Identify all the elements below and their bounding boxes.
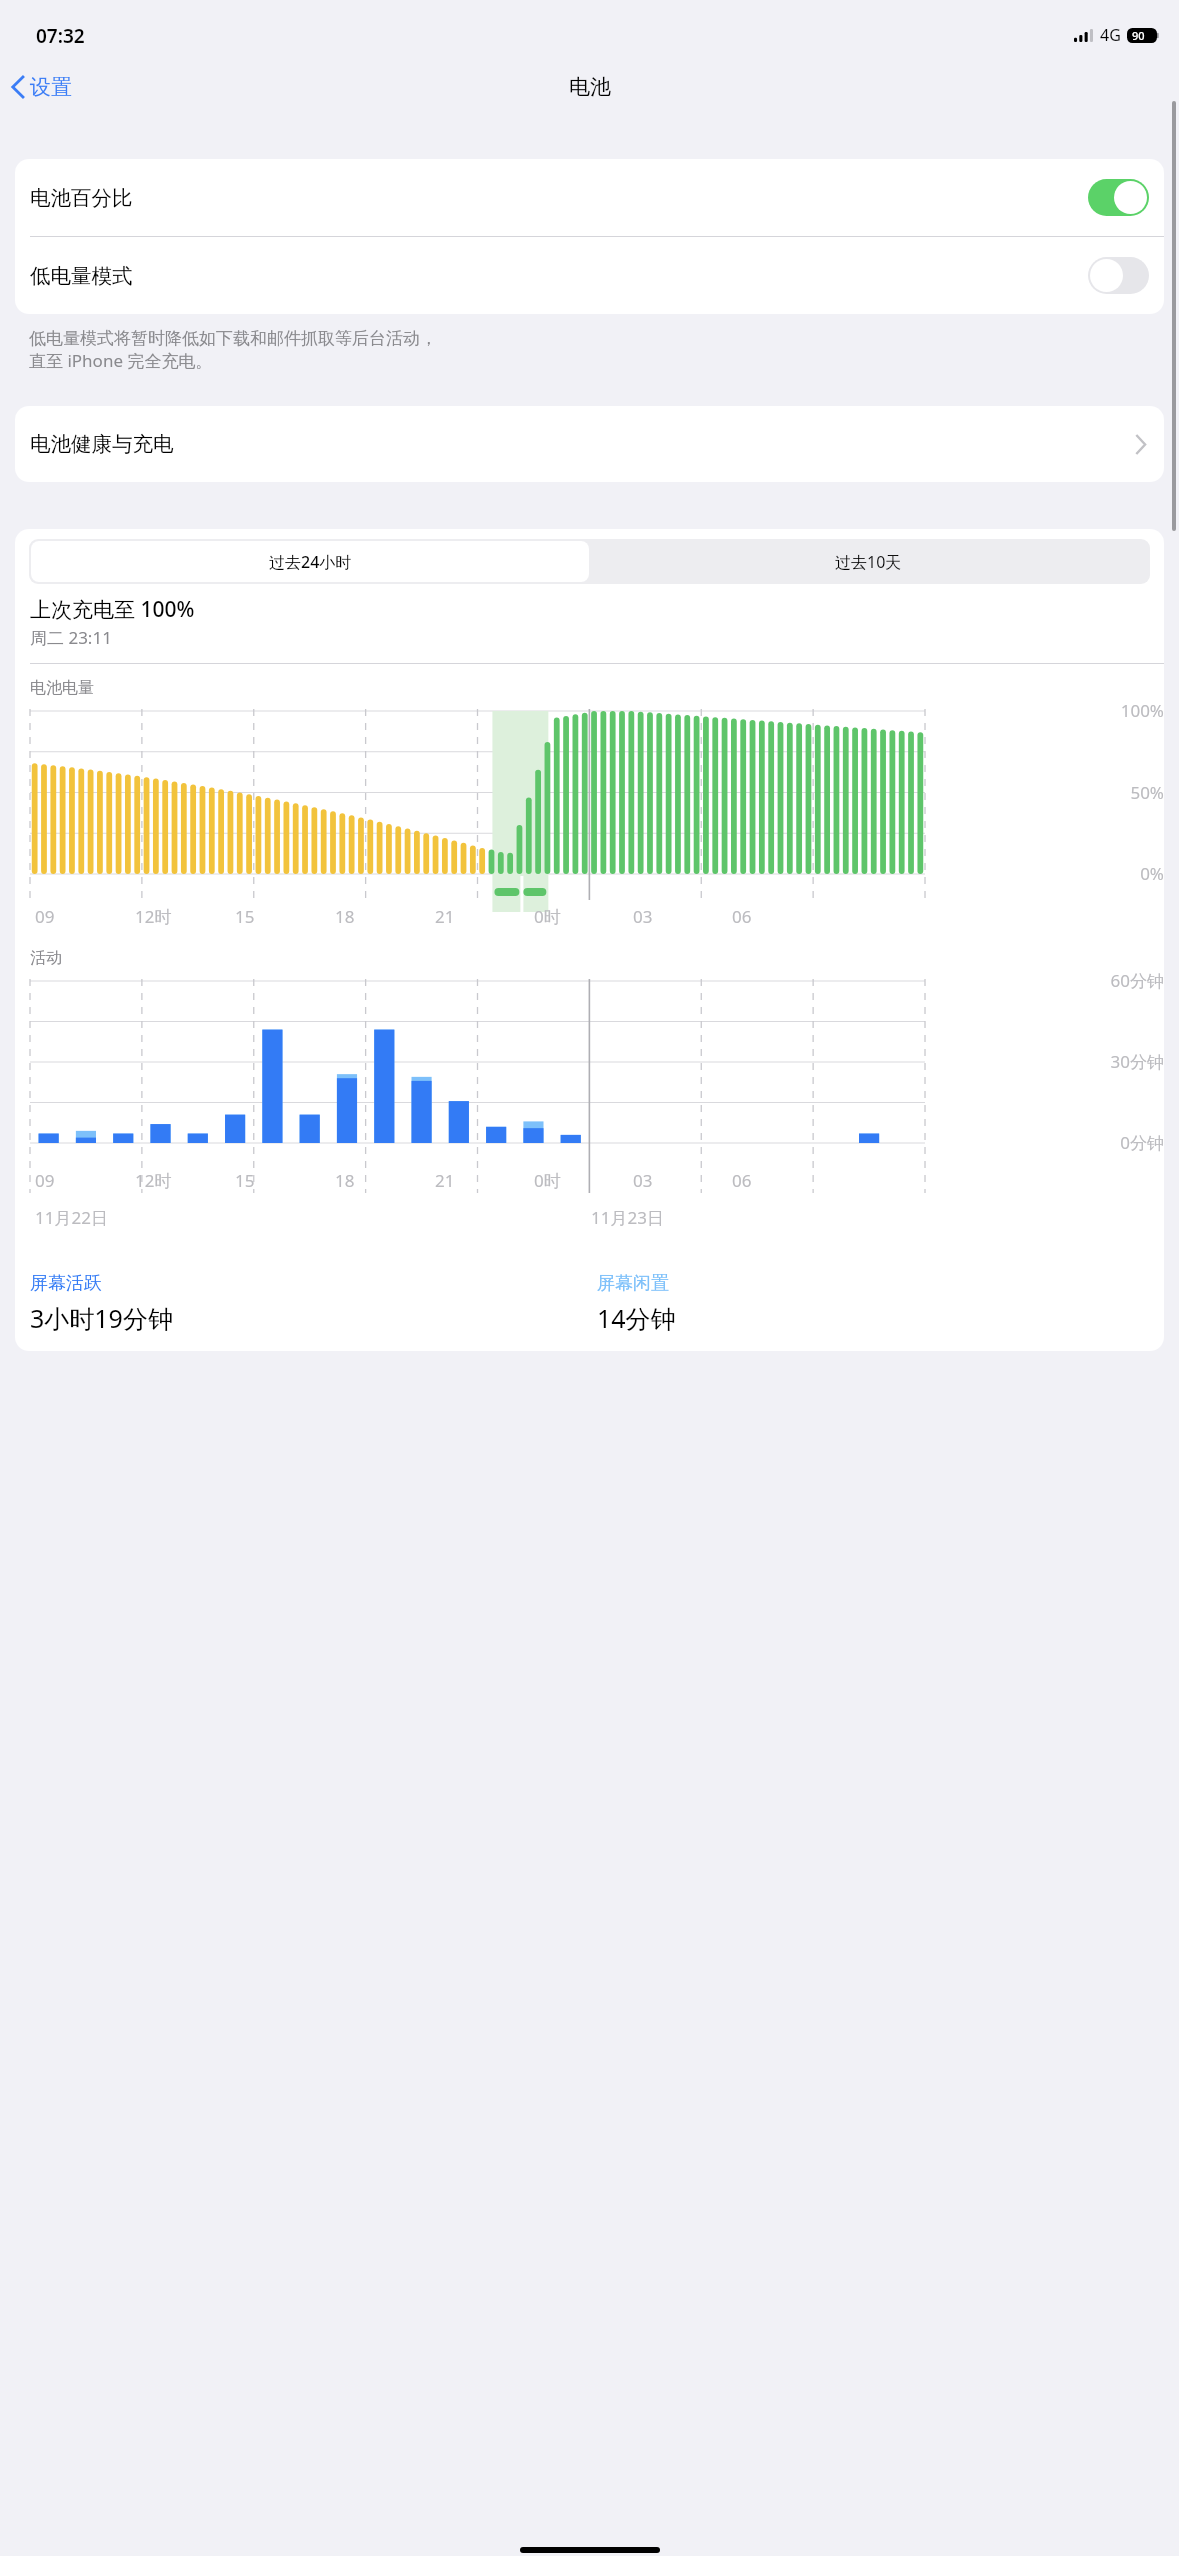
staticText: 11月23日 [591, 1206, 664, 1229]
staticText: 过去24小时 [269, 551, 352, 573]
staticText: 18 [335, 905, 355, 928]
staticText: 03 [633, 1169, 653, 1192]
button[interactable]: 电池健康与充电 [15, 406, 1164, 482]
staticText: 0时 [534, 1169, 561, 1192]
staticText: 06 [732, 1169, 752, 1192]
staticText: 50% [15, 781, 1164, 804]
staticText: 活动 [30, 948, 62, 968]
staticText: 09 [35, 1169, 55, 1192]
staticText: 4G [1100, 24, 1121, 46]
staticText: 60分钟 [15, 969, 1164, 992]
button[interactable]: 过去10天 [589, 541, 1148, 582]
button[interactable]: 低电量模式 [1088, 257, 1149, 294]
staticText: 电池健康与充电 [30, 431, 174, 457]
staticText: 18 [335, 1169, 355, 1192]
staticText: 15 [235, 1169, 255, 1192]
staticText: 电池 [569, 74, 611, 100]
staticText: 12时 [135, 1169, 172, 1192]
staticText: 100% [15, 699, 1164, 722]
staticText: 电池电量 [30, 678, 94, 698]
staticText: 设置 [30, 74, 72, 100]
staticText: 07:32 [36, 23, 85, 49]
staticText: 21 [435, 905, 455, 928]
staticText: 电池百分比 [30, 185, 133, 211]
staticText: 11月22日 [35, 1206, 108, 1229]
staticText: 直至 iPhone 完全充电。 [29, 349, 213, 372]
staticText: 屏幕闲置 [597, 1272, 669, 1295]
staticText: 09 [35, 905, 55, 928]
staticText: 屏幕活跃 [30, 1272, 102, 1295]
button[interactable]: 设置 [0, 70, 82, 104]
staticText: 15 [235, 905, 255, 928]
button[interactable]: 电池百分比 [1088, 179, 1149, 216]
staticText: 低电量模式将暂时降低如下载和邮件抓取等后台活动， [29, 328, 437, 349]
staticText: 90 [1132, 28, 1145, 43]
staticText: 06 [732, 905, 752, 928]
button[interactable]: 过去24小时 [31, 541, 589, 582]
staticText: 上次充电至 100% [30, 595, 195, 624]
staticText: 低电量模式 [30, 263, 133, 289]
staticText: 0时 [534, 905, 561, 928]
button[interactable]: 低电量模式 [15, 237, 1164, 314]
staticText: 3小时19分钟 [30, 1301, 173, 1335]
staticText: 03 [633, 905, 653, 928]
staticText: 12时 [135, 905, 172, 928]
staticText: 14分钟 [597, 1301, 676, 1335]
staticText: 过去10天 [835, 551, 902, 573]
staticText: 周二 23:11 [30, 626, 112, 649]
staticText: 0分钟 [15, 1131, 1164, 1154]
staticText: 0% [15, 862, 1164, 885]
button[interactable]: 电池百分比 [15, 159, 1164, 236]
staticText: 21 [435, 1169, 455, 1192]
staticText: 30分钟 [15, 1050, 1164, 1073]
